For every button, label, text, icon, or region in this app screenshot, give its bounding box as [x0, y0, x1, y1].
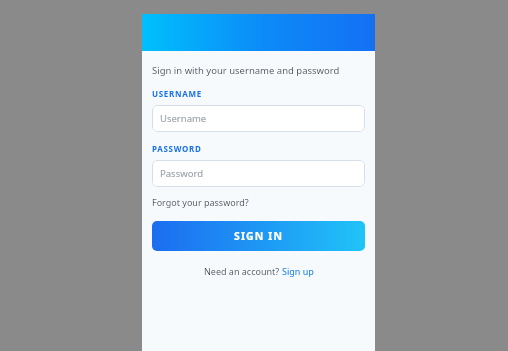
staticText: Need an account?	[204, 265, 282, 277]
staticText: SIGN IN	[234, 229, 284, 243]
staticText: PASSWORD	[152, 143, 202, 154]
button[interactable]: Sign up	[282, 265, 314, 277]
staticText: Forgot your password?	[152, 196, 249, 208]
staticText: Password	[160, 167, 203, 180]
button[interactable]: Username	[152, 105, 365, 132]
button[interactable]: Forgot your password?	[152, 195, 249, 209]
button[interactable]: SIGN IN	[152, 221, 365, 251]
staticText: Sign in with your username and password	[152, 64, 340, 77]
staticText: Username	[160, 112, 207, 125]
staticText: Sign up	[282, 265, 314, 277]
button[interactable]: Password	[152, 160, 365, 187]
staticText: USERNAME	[152, 88, 202, 99]
